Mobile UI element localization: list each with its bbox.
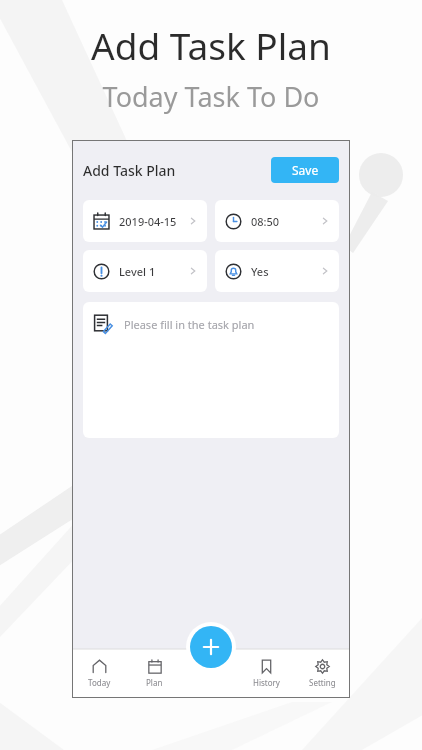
button[interactable]: 08:50 (215, 200, 339, 242)
button[interactable]: Plan (127, 649, 182, 698)
button[interactable]: Yes (215, 250, 339, 292)
staticText: Today Task To Do (0, 78, 422, 115)
staticText: Today (88, 677, 111, 688)
button[interactable]: Setting (294, 649, 350, 698)
button[interactable]: Please fill in the task plan (83, 302, 339, 438)
button[interactable]: Add task (190, 626, 232, 668)
staticText: History (253, 677, 280, 688)
button[interactable]: Save (271, 157, 339, 183)
staticText: 2019-04-15 (119, 214, 177, 229)
staticText: Setting (309, 677, 336, 688)
button[interactable]: Level 1 (83, 250, 207, 292)
button[interactable]: History (238, 649, 294, 698)
staticText: Level 1 (119, 264, 156, 279)
staticText: Plan (146, 677, 163, 688)
button[interactable]: Today (72, 649, 127, 698)
staticText: Please fill in the task plan (124, 317, 255, 332)
button[interactable]: 2019-04-15 (83, 200, 207, 242)
staticText: Add Task Plan (0, 20, 422, 70)
staticText: 08:50 (251, 214, 280, 229)
staticText: Add Task Plan (83, 161, 176, 180)
staticText: Yes (251, 264, 269, 279)
staticText: Save (292, 162, 319, 178)
